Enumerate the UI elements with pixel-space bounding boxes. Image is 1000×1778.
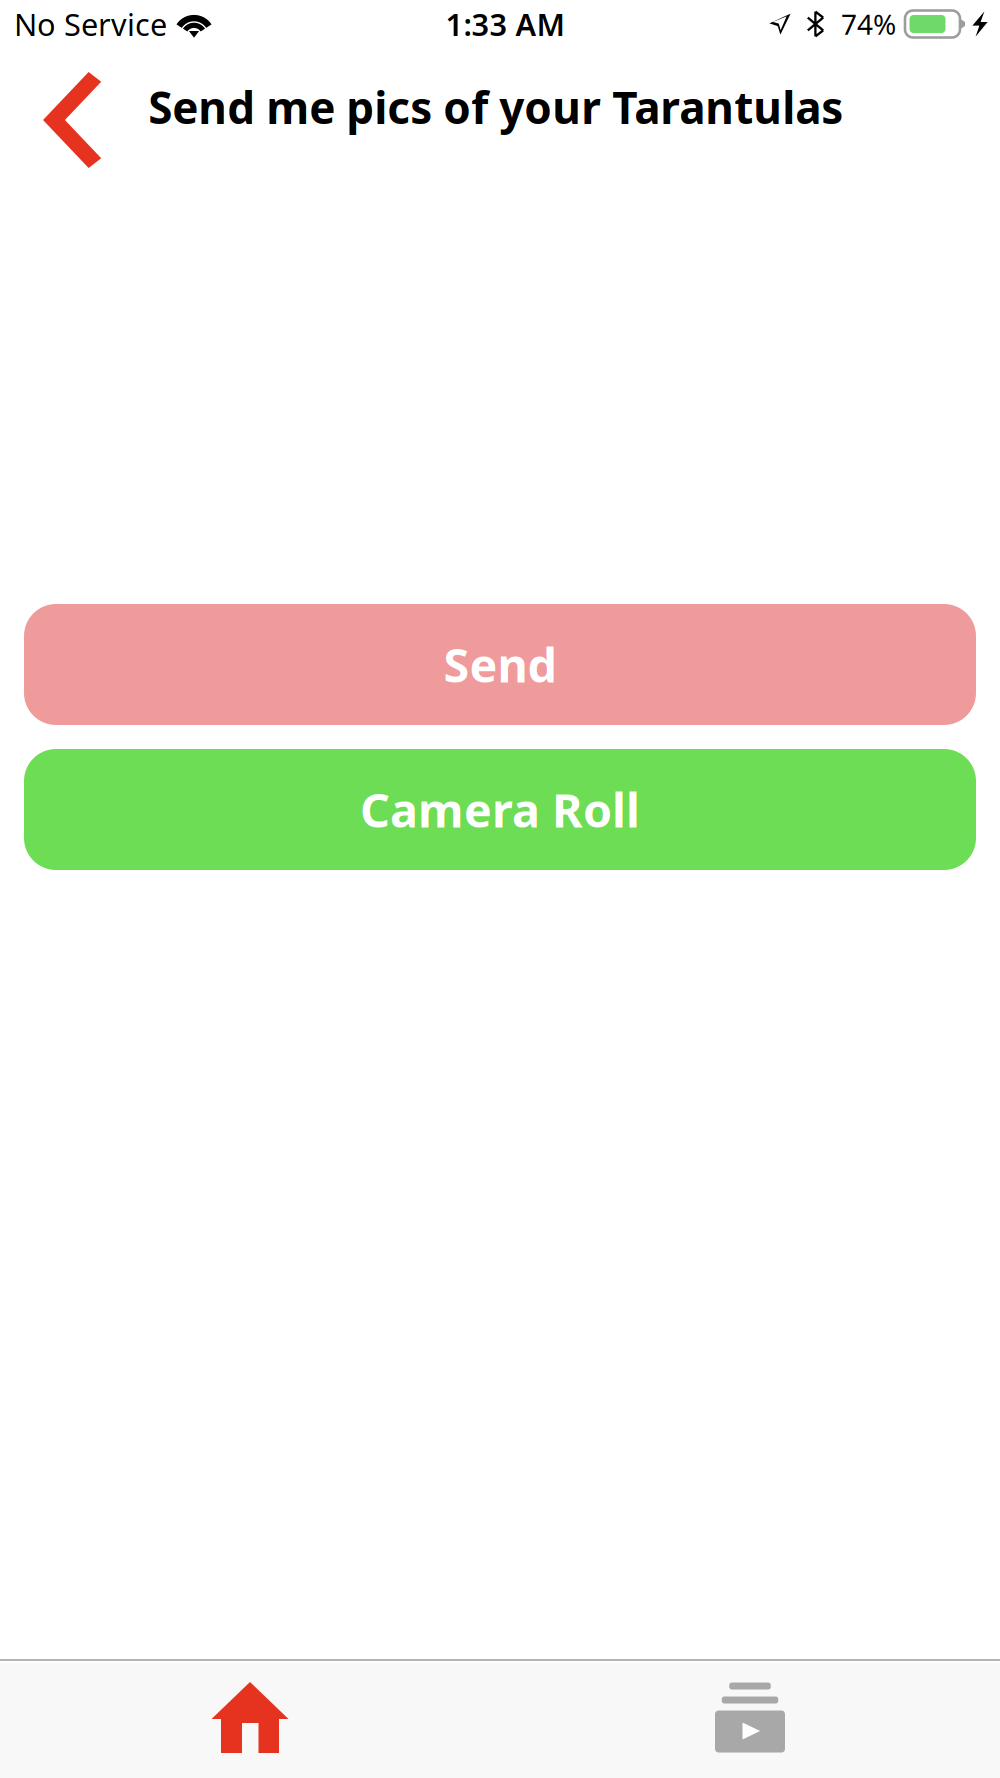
button[interactable]: Library <box>500 1662 1000 1778</box>
staticText: Send me pics of your Tarantulas <box>148 78 843 136</box>
staticText: Camera Roll <box>360 778 640 840</box>
button[interactable]: Camera Roll <box>24 749 976 870</box>
staticText: 74% <box>841 5 896 43</box>
button[interactable]: Send <box>24 604 976 725</box>
staticText: 1:33 AM <box>445 4 564 44</box>
button[interactable]: Home <box>0 1662 500 1778</box>
staticText: No Service <box>14 4 167 44</box>
staticText: Send <box>443 633 556 695</box>
button[interactable]: Back <box>0 48 148 192</box>
